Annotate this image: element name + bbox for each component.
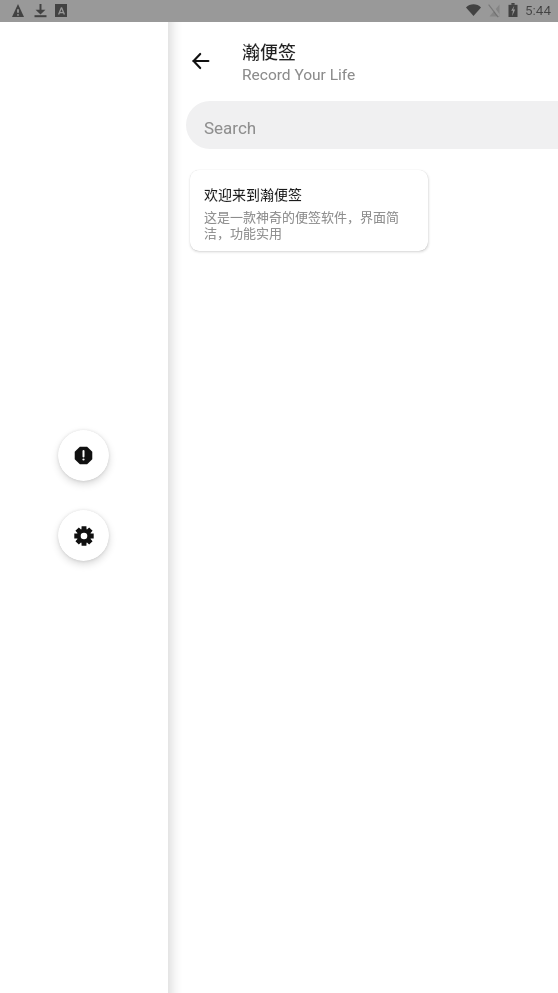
- staticText: 欢迎来到瀚便签: [204, 184, 302, 204]
- button[interactable]: Search: [186, 101, 558, 149]
- staticText: Record Your Life: [242, 66, 356, 84]
- button[interactable]: Settings: [58, 510, 109, 561]
- button[interactable]: Report a problem: [58, 430, 109, 481]
- staticText: 这是一款神奇的便签软件，界面简洁，功能实用: [204, 207, 418, 242]
- button[interactable]: 欢迎来到瀚便签: [190, 170, 428, 251]
- staticText: 5:44: [525, 2, 552, 18]
- staticText: 瀚便签: [242, 38, 296, 64]
- staticText: Search: [204, 118, 257, 138]
- button[interactable]: Back: [183, 43, 219, 79]
